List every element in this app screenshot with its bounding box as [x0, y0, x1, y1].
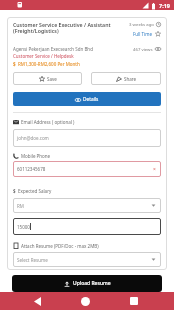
button[interactable]: Customer Service Executive / Assistant (… [13, 21, 129, 34]
staticText: 15000 [17, 224, 30, 230]
staticText: Details [83, 96, 99, 103]
button[interactable]: Save [13, 72, 82, 85]
staticText: 7:19 [159, 2, 170, 9]
staticText: $ [13, 188, 16, 194]
button[interactable] [78, 294, 92, 308]
button[interactable]: Customer Service / Helpdesk [13, 53, 74, 59]
button[interactable]: 60112345678 [13, 161, 161, 177]
staticText: Share [124, 76, 137, 82]
staticText: Select Resume [17, 257, 48, 263]
staticText: Attach Resume (PDF/Doc - max 2MB) [21, 243, 99, 249]
button[interactable]: Details [13, 92, 161, 106]
staticText: 467 views [133, 46, 153, 52]
staticText: × [153, 166, 156, 173]
button[interactable]: Select Resume [13, 252, 161, 267]
button[interactable] [127, 294, 141, 308]
staticText: RM [17, 203, 24, 209]
staticText: 3 weeks ago [129, 21, 154, 27]
button[interactable] [30, 294, 44, 308]
button[interactable]: RM [13, 198, 161, 213]
button[interactable]: john@doe.com [13, 129, 161, 147]
staticText: $ [13, 61, 16, 67]
staticText: Expected Salary [18, 188, 52, 194]
button[interactable]: Upload Resume [12, 275, 162, 292]
button[interactable]: 15000 [13, 218, 161, 235]
staticText: RM1,300-RM2,600 Per Month [18, 61, 80, 67]
staticText: Full Time [133, 31, 153, 37]
staticText: Save [47, 76, 57, 82]
staticText: Agensi Pekerjaan Execsearch Sdn Bhd [13, 46, 133, 52]
staticText: Upload Resume [73, 280, 111, 287]
staticText: Email Address ( optional ) [21, 119, 75, 125]
button[interactable]: Share [91, 72, 161, 85]
staticText: Mobile Phone [21, 153, 51, 159]
staticText: john@doe.com [17, 135, 49, 141]
staticText: 60112345678 [17, 166, 46, 172]
